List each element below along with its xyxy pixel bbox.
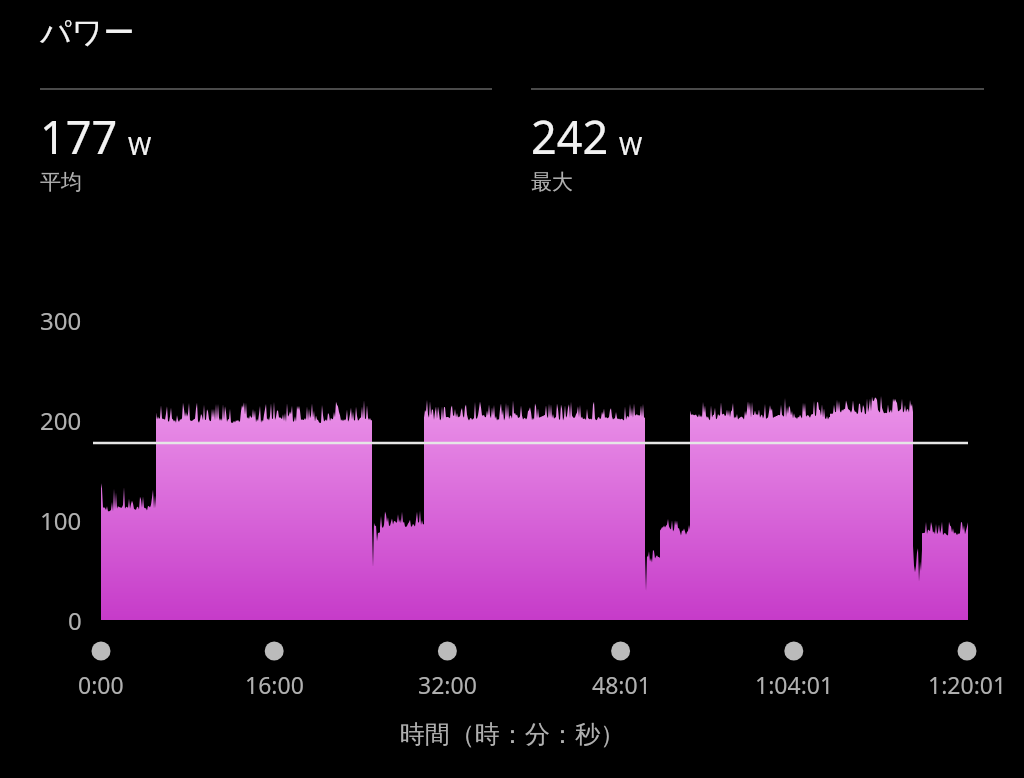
staticText: 最大: [531, 169, 573, 195]
staticText: 1:20:01: [928, 669, 1007, 700]
staticText: パワー: [40, 13, 135, 52]
staticText: 200: [40, 404, 82, 437]
staticText: 177: [40, 106, 118, 167]
staticText: 32:00: [418, 669, 477, 700]
button[interactable]: 177: [40, 88, 492, 195]
staticText: 242: [531, 106, 609, 167]
other: Power over time chart: [0, 0, 1024, 778]
staticText: 0: [68, 604, 82, 637]
staticText: 1:04:01: [755, 669, 834, 700]
staticText: 16:00: [245, 669, 304, 700]
staticText: 時間（時：分：秒）: [400, 719, 625, 750]
staticText: W: [128, 128, 152, 162]
staticText: 48:01: [592, 669, 651, 700]
staticText: 0:00: [78, 669, 124, 700]
staticText: 平均: [40, 169, 82, 195]
button[interactable]: 242: [531, 88, 984, 195]
staticText: 300: [40, 304, 82, 337]
staticText: 100: [40, 504, 82, 537]
staticText: W: [619, 128, 643, 162]
